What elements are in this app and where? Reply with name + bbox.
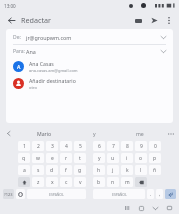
button[interactable]: c: [60, 177, 72, 187]
button[interactable]: k: [121, 165, 133, 175]
staticText: ESPAÑOL: [112, 192, 127, 197]
staticText: n: [111, 179, 115, 186]
button[interactable]: Attach file: [132, 14, 145, 27]
button[interactable]: 7: [107, 141, 119, 151]
staticText: Mario: [37, 130, 52, 137]
button[interactable]: Shift: [18, 177, 30, 187]
button[interactable]: i: [121, 153, 133, 163]
button[interactable]: s: [32, 165, 44, 175]
button[interactable]: 6: [93, 141, 105, 151]
button[interactable]: l: [135, 165, 147, 175]
button[interactable]: w: [32, 153, 44, 163]
button[interactable]: n: [107, 177, 119, 187]
staticText: ,: [159, 191, 161, 198]
button[interactable]: 4: [60, 141, 72, 151]
button[interactable]: Mario: [17, 127, 72, 140]
button[interactable]: me: [117, 127, 162, 140]
button[interactable]: q: [18, 153, 30, 163]
staticText: e: [51, 155, 54, 162]
button[interactable]: A: [13, 58, 166, 75]
button[interactable]: Send: [148, 14, 161, 27]
button[interactable]: 5: [74, 141, 86, 151]
button[interactable]: o: [135, 153, 147, 163]
button[interactable]: Home: [134, 202, 148, 214]
staticText: q: [22, 155, 26, 162]
button[interactable]: 3: [46, 141, 58, 151]
button[interactable]: 8: [121, 141, 133, 151]
button[interactable]: De:: [13, 31, 166, 44]
staticText: ñ: [153, 167, 157, 174]
button[interactable]: z: [32, 177, 44, 187]
staticText: f: [65, 167, 67, 174]
button[interactable]: Enter: [165, 189, 176, 199]
staticText: g: [78, 167, 82, 174]
button[interactable]: Backspace: [135, 177, 147, 187]
button[interactable]: y: [72, 127, 117, 140]
button[interactable]: Back: [148, 202, 162, 214]
staticText: ?123: [4, 192, 13, 197]
button[interactable]: More options: [163, 15, 174, 26]
button[interactable]: More suggestions: [162, 127, 179, 140]
staticText: De:: [13, 34, 21, 41]
staticText: w: [36, 155, 40, 162]
button[interactable]: t: [74, 153, 86, 163]
button[interactable]: Para:: [13, 45, 166, 58]
button[interactable]: Añadir destinatario: [13, 75, 166, 92]
staticText: 5: [79, 143, 82, 150]
staticText: me: [136, 130, 144, 137]
button[interactable]: 2: [32, 141, 44, 151]
staticText: i: [126, 155, 128, 162]
staticText: u: [111, 155, 115, 162]
staticText: c: [65, 179, 68, 186]
button[interactable]: ,: [156, 189, 163, 199]
staticText: d: [50, 167, 54, 174]
staticText: 13:00: [4, 3, 16, 9]
button[interactable]: u: [107, 153, 119, 163]
staticText: Ana Casas: [29, 60, 54, 67]
button[interactable]: m: [121, 177, 133, 187]
staticText: 1: [23, 143, 26, 150]
staticText: otro: [29, 85, 37, 90]
button[interactable]: j: [107, 165, 119, 175]
button[interactable]: d: [46, 165, 58, 175]
staticText: Para:: [13, 48, 25, 55]
button[interactable]: a: [18, 165, 30, 175]
staticText: o: [139, 155, 143, 162]
button[interactable]: v: [74, 177, 86, 187]
button[interactable]: Space: [93, 189, 145, 199]
button[interactable]: x: [46, 177, 58, 187]
staticText: a: [23, 167, 26, 174]
staticText: Añadir destinatario: [29, 77, 76, 84]
button[interactable]: f: [60, 165, 72, 175]
button[interactable]: 0: [149, 141, 161, 151]
button[interactable]: y: [93, 153, 105, 163]
staticText: j: [112, 167, 114, 174]
button[interactable]: e: [46, 153, 58, 163]
button[interactable]: ñ: [149, 165, 161, 175]
button[interactable]: b: [93, 177, 105, 187]
staticText: 7: [112, 143, 115, 150]
staticText: 2: [37, 143, 40, 150]
staticText: 0: [154, 143, 157, 150]
button[interactable]: Recents: [120, 202, 134, 214]
button[interactable]: Emoji: [16, 189, 25, 199]
button[interactable]: p: [149, 153, 161, 163]
button[interactable]: Space: [27, 189, 86, 199]
button[interactable]: Back: [5, 14, 18, 27]
button[interactable]: ?123: [3, 189, 14, 199]
staticText: jr@groupwm.com: [26, 34, 72, 41]
button[interactable]: r: [60, 153, 72, 163]
staticText: 9: [140, 143, 143, 150]
staticText: ana.casas.am@gmail.com: [29, 68, 78, 73]
button[interactable]: g: [74, 165, 86, 175]
button[interactable]: .: [147, 189, 154, 199]
button[interactable]: 1: [18, 141, 30, 151]
staticText: y: [98, 155, 101, 162]
button[interactable]: Previous suggestions: [0, 127, 17, 140]
button[interactable]: h: [93, 165, 105, 175]
button[interactable]: 9: [135, 141, 147, 151]
staticText: Redactar: [21, 15, 52, 25]
staticText: y: [93, 130, 96, 137]
staticText: 4: [65, 143, 68, 150]
button[interactable]: Hide keyboard: [162, 202, 176, 214]
